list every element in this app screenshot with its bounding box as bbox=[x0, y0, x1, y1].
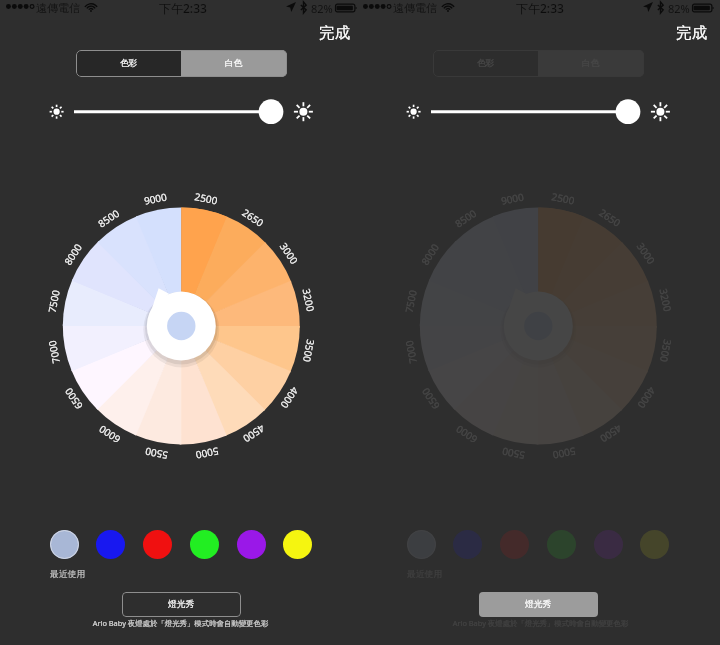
staticText: 最近使用 bbox=[50, 569, 86, 580]
button[interactable]: High brightness bbox=[290, 96, 318, 130]
button[interactable]: Red bbox=[143, 530, 172, 559]
button[interactable]: High brightness bbox=[647, 96, 675, 130]
button[interactable]: Purple bbox=[594, 530, 623, 559]
button[interactable]: Brightness slider bbox=[70, 96, 285, 130]
button[interactable]: Purple bbox=[237, 530, 266, 559]
staticText: Arlo Baby 夜燈處於「燈光秀」模式時會自動變更色彩 bbox=[359, 618, 720, 628]
staticText: 82% bbox=[311, 1, 333, 16]
button[interactable]: Recent bbox=[407, 530, 436, 559]
staticText: 遠傳電信 bbox=[36, 1, 80, 15]
staticText: 燈光秀 bbox=[525, 599, 552, 610]
button[interactable]: 色彩 bbox=[433, 50, 538, 77]
staticText: 色彩 bbox=[477, 58, 495, 69]
staticText: 白色 bbox=[582, 58, 600, 69]
staticText: 下午2:33 bbox=[159, 0, 207, 16]
button[interactable]: Green bbox=[190, 530, 219, 559]
button[interactable]: 燈光秀 bbox=[479, 592, 598, 617]
button[interactable]: 白色 bbox=[181, 50, 287, 77]
staticText: 白色 bbox=[225, 58, 243, 69]
button[interactable]: Low brightness bbox=[401, 96, 427, 130]
button[interactable]: Recent bbox=[50, 530, 79, 559]
button[interactable]: 燈光秀 bbox=[122, 592, 241, 617]
button[interactable]: 色彩 bbox=[76, 50, 181, 77]
button[interactable]: Blue bbox=[96, 530, 125, 559]
button[interactable]: Yellow bbox=[640, 530, 669, 559]
button[interactable]: 完成 bbox=[676, 23, 707, 43]
button[interactable]: Yellow bbox=[283, 530, 312, 559]
staticText: 82% bbox=[668, 1, 690, 16]
button[interactable]: 完成 bbox=[319, 23, 350, 43]
button[interactable]: Brightness slider bbox=[427, 96, 642, 130]
staticText: 色彩 bbox=[120, 58, 138, 69]
staticText: 燈光秀 bbox=[168, 599, 195, 610]
staticText: 完成 bbox=[676, 23, 707, 43]
staticText: 完成 bbox=[319, 23, 350, 43]
staticText: 遠傳電信 bbox=[393, 1, 437, 15]
staticText: Arlo Baby 夜燈處於「燈光秀」模式時會自動變更色彩 bbox=[2, 618, 359, 628]
button[interactable]: Green bbox=[547, 530, 576, 559]
staticText: 下午2:33 bbox=[516, 0, 564, 16]
staticText: 最近使用 bbox=[407, 569, 443, 580]
button[interactable]: Low brightness bbox=[44, 96, 70, 130]
button[interactable]: Red bbox=[500, 530, 529, 559]
button[interactable]: Blue bbox=[453, 530, 482, 559]
